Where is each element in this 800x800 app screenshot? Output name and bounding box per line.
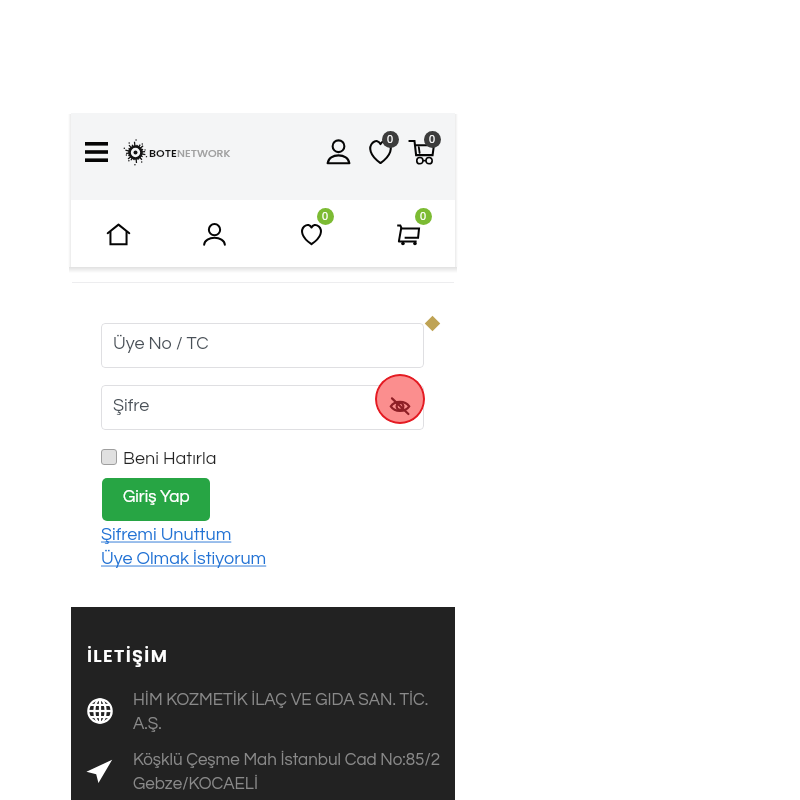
button[interactable]: Show password	[375, 374, 425, 424]
button[interactable]: Home	[94, 210, 142, 258]
button[interactable]: Cart	[384, 210, 432, 258]
staticText: Şifre	[113, 396, 150, 415]
button[interactable]: Üye Olmak İstiyorum	[101, 549, 267, 568]
staticText: 0	[322, 211, 329, 222]
staticText: HİM KOZMETİK İLAÇ VE GIDA SAN. TİC. A.Ş.	[133, 691, 455, 733]
button[interactable]: Account	[190, 210, 238, 258]
staticText: İLETİŞİM	[87, 643, 169, 668]
button[interactable]: BOTE	[119, 136, 259, 168]
button[interactable]: Favorites	[287, 210, 335, 258]
button[interactable]: Account	[314, 128, 362, 176]
button[interactable]: Şifre	[101, 385, 424, 430]
button[interactable]: Şifremi Unuttum	[101, 525, 232, 544]
button[interactable]: Menu	[72, 128, 121, 176]
staticText: 0	[429, 134, 436, 145]
button[interactable]: Favorites	[356, 128, 404, 176]
button[interactable]: Giriş Yap	[102, 478, 210, 521]
staticText: Üye Olmak İstiyorum	[101, 549, 267, 568]
button[interactable]: HİM KOZMETİK İLAÇ VE GIDA SAN. TİC. A.Ş.	[81, 691, 465, 747]
button[interactable]: Cart	[397, 128, 445, 176]
staticText: Beni Hatırla	[123, 449, 217, 468]
button[interactable]: Köşklü Çeşme Mah İstanbul Cad No:85/2 Ge…	[81, 751, 465, 800]
staticText: Köşklü Çeşme Mah İstanbul Cad No:85/2 Ge…	[133, 751, 455, 793]
staticText: BOTE	[149, 145, 177, 160]
button[interactable]: Beni Hatırla	[101, 447, 217, 467]
staticText: 0	[387, 134, 394, 145]
staticText: NETWORK	[177, 145, 231, 160]
staticText: Şifremi Unuttum	[101, 525, 232, 544]
staticText: 0	[420, 211, 427, 222]
button[interactable]: Üye No / TC	[101, 323, 424, 368]
staticText: Üye No / TC	[113, 334, 209, 353]
staticText: Giriş Yap	[123, 488, 190, 506]
